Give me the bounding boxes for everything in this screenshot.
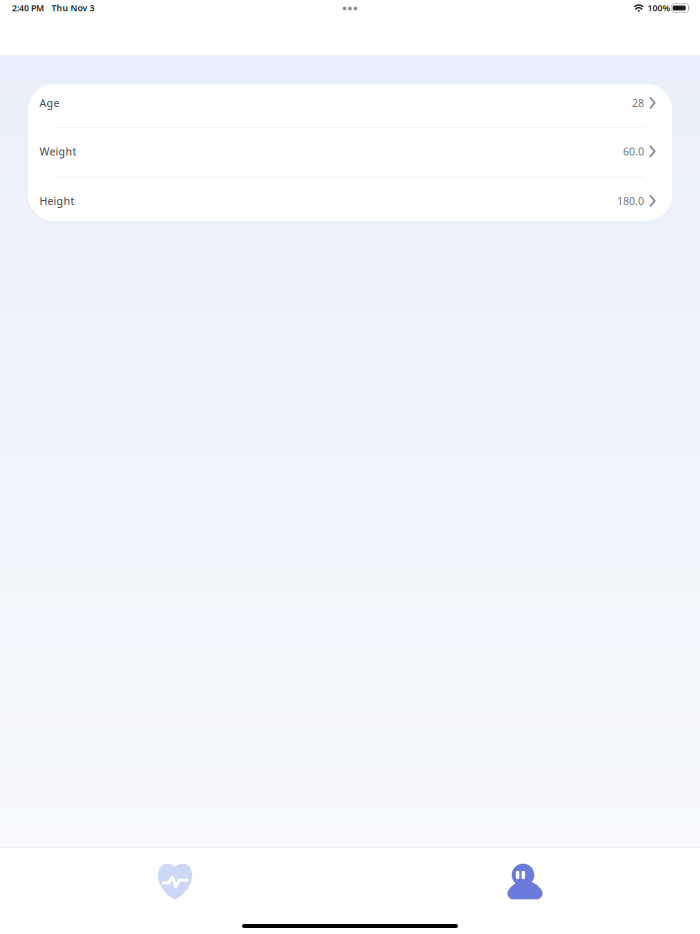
button[interactable]: Age <box>28 84 672 127</box>
button[interactable]: Height <box>28 177 672 221</box>
staticText: 180.0 <box>617 194 644 208</box>
staticText: 60.0 <box>623 144 644 158</box>
button[interactable]: Activity <box>0 859 350 903</box>
staticText: Weight <box>40 144 77 158</box>
staticText: Age <box>40 96 60 110</box>
staticText: 28 <box>632 96 644 110</box>
staticText: 100% <box>648 2 671 14</box>
button[interactable]: Profile <box>350 860 700 903</box>
staticText: Thu Nov 3 <box>52 2 95 14</box>
staticText: Height <box>40 194 75 208</box>
button[interactable]: Weight <box>28 128 672 176</box>
staticText: 2:40 PM <box>12 2 44 14</box>
